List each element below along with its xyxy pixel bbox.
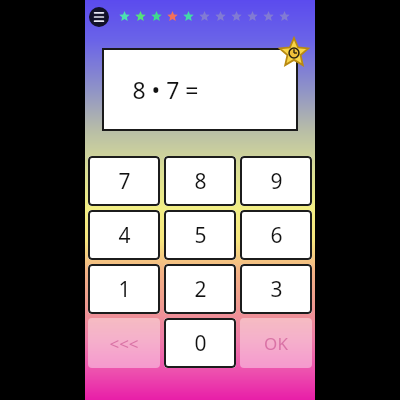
staticText: 8 — [194, 167, 207, 196]
staticText: 2 — [194, 275, 207, 304]
button[interactable]: Menu — [89, 7, 109, 27]
button[interactable]: 0 — [164, 318, 236, 368]
staticText: 4 — [118, 221, 131, 250]
staticText: 3 — [270, 275, 283, 304]
button[interactable]: 2 — [164, 264, 236, 314]
staticText: 5 — [194, 221, 207, 250]
staticText: 7 — [118, 167, 131, 196]
staticText: 1 — [118, 275, 131, 304]
staticText: OK — [264, 332, 288, 355]
button[interactable]: Timer bonus — [279, 38, 309, 68]
button[interactable]: 8 — [164, 156, 236, 206]
button[interactable]: 7 — [88, 156, 160, 206]
button[interactable]: 5 — [164, 210, 236, 260]
staticText: 6 — [270, 221, 283, 250]
button[interactable]: 3 — [240, 264, 312, 314]
button[interactable]: <<< — [88, 318, 160, 368]
staticText: <<< — [109, 332, 139, 355]
staticText: 0 — [194, 329, 207, 358]
button[interactable]: 6 — [240, 210, 312, 260]
button[interactable]: 1 — [88, 264, 160, 314]
button[interactable]: 9 — [240, 156, 312, 206]
button[interactable]: OK — [240, 318, 312, 368]
staticText: 9 — [270, 167, 283, 196]
button[interactable]: 4 — [88, 210, 160, 260]
button[interactable]: 8 • 7 = — [102, 48, 298, 131]
staticText: 8 • 7 = — [132, 74, 199, 105]
